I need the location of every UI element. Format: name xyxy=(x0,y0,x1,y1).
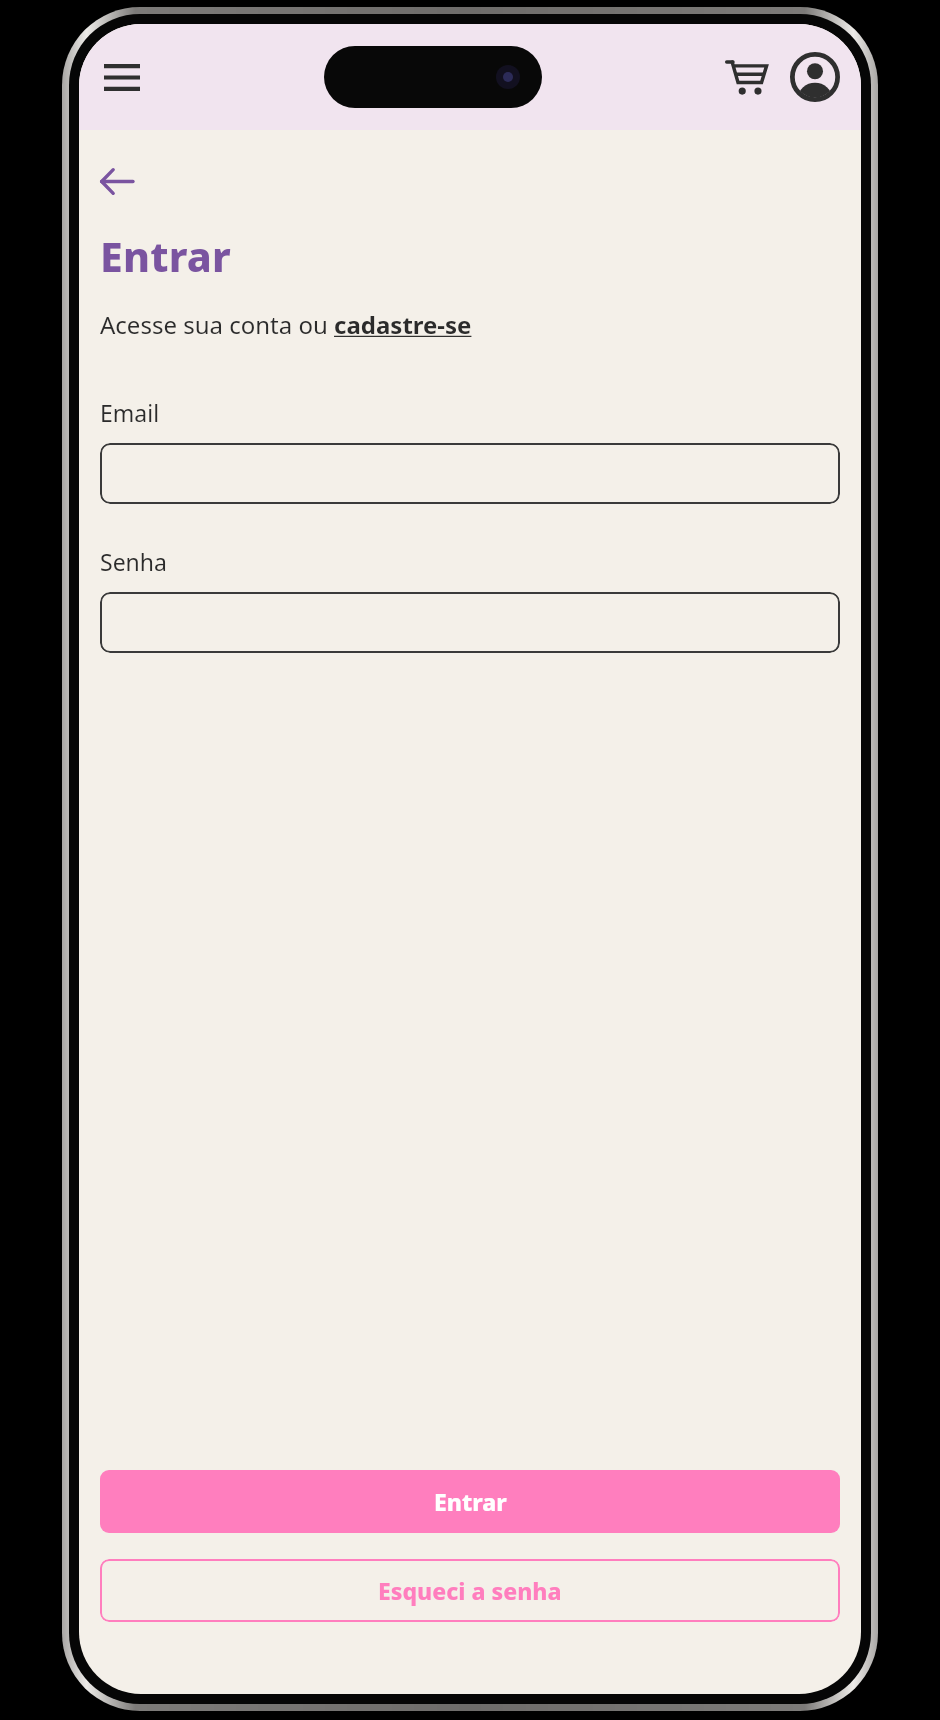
staticText: Entrar xyxy=(100,228,231,284)
button[interactable]: Entrar xyxy=(100,1470,840,1533)
button[interactable]: Cart xyxy=(717,48,775,106)
button[interactable]: Menu xyxy=(95,50,149,104)
button[interactable] xyxy=(100,443,840,504)
button[interactable]: Back xyxy=(100,160,148,202)
button[interactable]: Account xyxy=(785,47,845,107)
button[interactable] xyxy=(100,592,840,653)
staticText: Entrar xyxy=(434,1486,507,1517)
staticText: Senha xyxy=(100,546,167,577)
staticText: Esqueci a senha xyxy=(378,1575,562,1606)
staticText: Acesse sua conta ou cadastre-se xyxy=(100,308,472,341)
button[interactable]: Esqueci a senha xyxy=(100,1559,840,1622)
staticText: Email xyxy=(100,397,160,428)
